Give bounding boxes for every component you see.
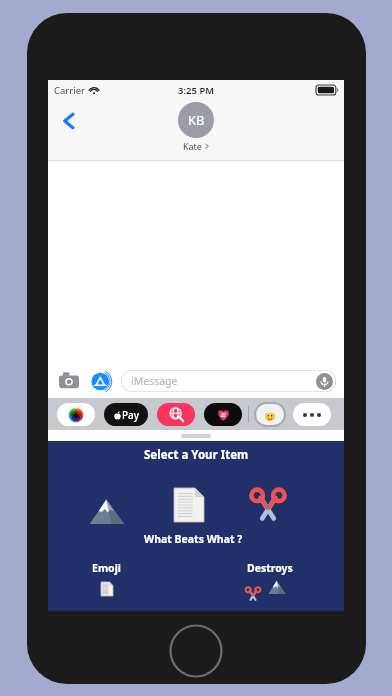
button[interactable]: Image search: [157, 403, 195, 426]
button[interactable]: Paper: [174, 488, 204, 522]
staticText: Carrier: [54, 84, 85, 97]
button[interactable]: Emoji: [92, 561, 121, 575]
button[interactable]: Destroys: [247, 561, 293, 575]
staticText: Pay: [122, 408, 140, 422]
staticText: Kate: [183, 140, 202, 152]
staticText: What Beats What ?: [144, 532, 243, 546]
button[interactable]: Mountain: [89, 498, 125, 524]
button[interactable]: Record audio: [316, 373, 333, 390]
button[interactable]: Home: [169, 624, 223, 678]
staticText: Select a Your Item: [144, 447, 249, 463]
button[interactable]: More apps: [293, 403, 331, 426]
button[interactable]: KB: [178, 102, 214, 152]
button[interactable]: Scissors: [250, 489, 286, 521]
button[interactable]: Digital Touch: [204, 403, 242, 426]
staticText: iMessage: [131, 374, 178, 388]
button[interactable]: Back: [52, 104, 86, 138]
staticText: 3:25 PM: [178, 84, 215, 97]
staticText: KB: [188, 111, 205, 129]
button[interactable]: iMessage: [121, 370, 336, 392]
button[interactable]: App Store: [88, 368, 114, 394]
button[interactable]: Apple Pay: [104, 403, 148, 426]
button[interactable]: Selected sticker app: [256, 404, 284, 425]
button[interactable]: Camera: [56, 368, 82, 394]
button[interactable]: Photos: [57, 403, 95, 426]
